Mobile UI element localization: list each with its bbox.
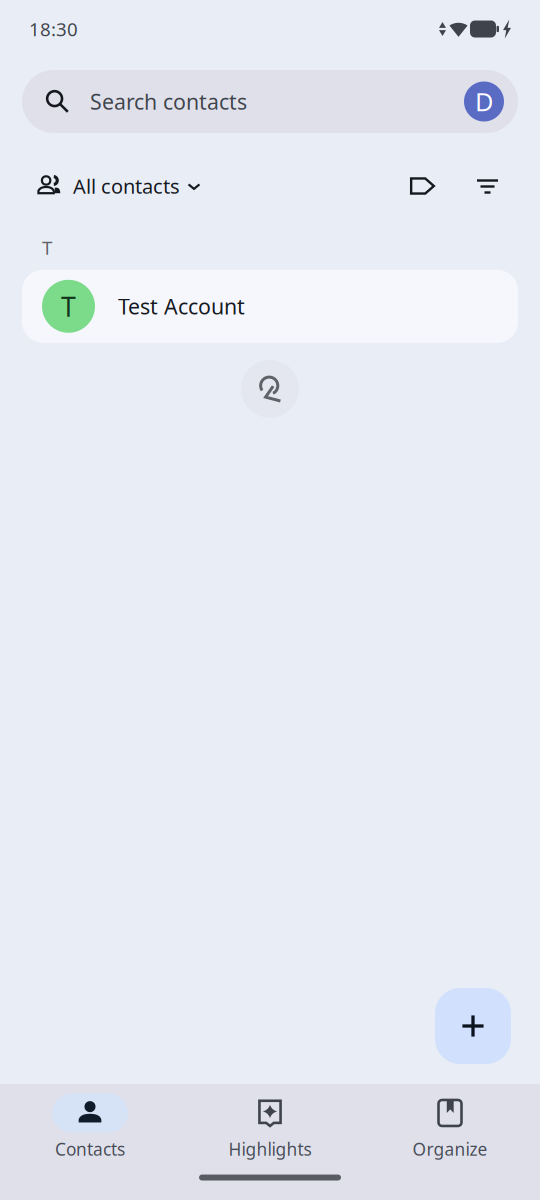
staticText: All contacts: [73, 173, 180, 199]
staticText: T: [42, 235, 52, 260]
button[interactable]: All contacts: [37, 165, 202, 207]
button[interactable]: Sort and filter: [466, 164, 509, 207]
staticText: T: [61, 289, 76, 324]
button[interactable]: Organize: [360, 1087, 540, 1166]
staticText: Test Account: [118, 292, 245, 320]
button[interactable]: Create contact: [435, 988, 511, 1064]
button[interactable]: Contacts: [0, 1087, 180, 1166]
button[interactable]: Search contacts: [0, 70, 540, 133]
staticText: Contacts: [55, 1137, 125, 1160]
button[interactable]: T: [0, 270, 540, 343]
staticText: Highlights: [228, 1137, 311, 1160]
button[interactable]: Labels: [400, 163, 445, 208]
button[interactable]: Highlights: [180, 1087, 360, 1166]
staticText: D: [475, 85, 493, 118]
staticText: 18:30: [29, 17, 78, 41]
staticText: Search contacts: [90, 87, 247, 116]
staticText: Organize: [412, 1137, 487, 1160]
